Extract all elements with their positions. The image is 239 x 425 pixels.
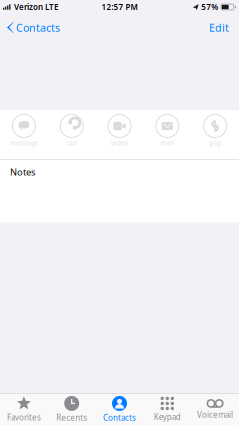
staticText: 12:57 PM (101, 2, 137, 12)
button[interactable]: Edit (199, 14, 239, 41)
staticText: Notes (10, 166, 35, 178)
button[interactable]: Voicemail (191, 399, 239, 420)
button[interactable]: message (0, 110, 48, 159)
button[interactable]: Contacts (0, 14, 68, 41)
staticText: Contacts (16, 20, 60, 35)
staticText: Voicemail (197, 409, 233, 420)
button[interactable]: Recents (48, 396, 96, 423)
button[interactable]: pay (191, 110, 239, 159)
staticText: mail (160, 138, 174, 147)
staticText: Favorites (7, 412, 41, 423)
staticText: Recents (56, 412, 87, 423)
button[interactable]: Contacts (96, 396, 143, 423)
staticText: Edit (209, 20, 229, 35)
button[interactable]: Favorites (0, 396, 48, 423)
staticText: call (66, 138, 77, 147)
staticText: Keypad (154, 412, 181, 422)
staticText: video (111, 138, 128, 147)
button[interactable]: Keypad (143, 397, 191, 422)
staticText: Contacts (103, 412, 136, 423)
button[interactable]: video (96, 110, 143, 159)
staticText: 57% (201, 2, 218, 12)
staticText: pay (210, 138, 221, 147)
button[interactable]: mail (143, 110, 191, 159)
staticText: Verizon LTE (14, 2, 58, 12)
button[interactable]: call (48, 110, 96, 159)
staticText: message (10, 138, 38, 147)
